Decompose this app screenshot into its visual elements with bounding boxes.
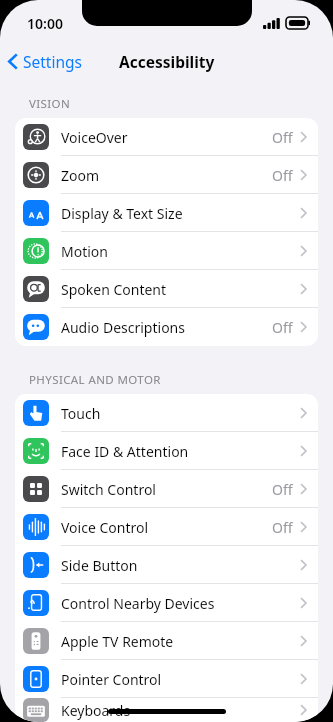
staticText: Audio Descriptions	[61, 318, 185, 337]
button[interactable]: Spoken Content	[15, 270, 318, 308]
button[interactable]: Keyboards	[15, 698, 318, 722]
staticText: 10:00	[27, 14, 63, 33]
staticText: Off	[272, 128, 293, 147]
button[interactable]: VoiceOver	[15, 118, 318, 156]
button[interactable]: Audio Descriptions	[15, 308, 318, 346]
button[interactable]: Face ID & Attention	[15, 432, 318, 470]
staticText: Face ID & Attention	[61, 442, 189, 461]
staticText: Pointer Control	[61, 670, 162, 689]
staticText: Display & Text Size	[61, 204, 183, 223]
staticText: Keyboards	[61, 701, 131, 720]
staticText: PHYSICAL AND MOTOR	[29, 372, 161, 388]
staticText: VoiceOver	[61, 128, 128, 147]
button[interactable]: Control Nearby Devices	[15, 584, 318, 622]
staticText: Touch	[61, 404, 101, 423]
button[interactable]: Motion	[15, 232, 318, 270]
button[interactable]: Settings	[0, 47, 90, 76]
button[interactable]: Voice Control	[15, 508, 318, 546]
staticText: Control Nearby Devices	[61, 594, 215, 613]
button[interactable]: Zoom	[15, 156, 318, 194]
staticText: VISION	[29, 96, 71, 112]
staticText: Zoom	[61, 166, 100, 185]
staticText: Voice Control	[61, 518, 149, 537]
button[interactable]: Switch Control	[15, 470, 318, 508]
button[interactable]: Apple TV Remote	[15, 622, 318, 660]
button[interactable]: Pointer Control	[15, 660, 318, 698]
button[interactable]: Display & Text Size	[15, 194, 318, 232]
staticText: Off	[272, 318, 293, 337]
staticText: Settings	[23, 51, 82, 72]
staticText: Spoken Content	[61, 280, 167, 299]
staticText: Accessibility	[119, 51, 215, 72]
staticText: Off	[272, 518, 293, 537]
staticText: Off	[272, 166, 293, 185]
staticText: Side Button	[61, 556, 138, 575]
button[interactable]: Touch	[15, 394, 318, 432]
staticText: Motion	[61, 242, 108, 261]
staticText: Switch Control	[61, 480, 156, 499]
button[interactable]: Side Button	[15, 546, 318, 584]
staticText: Off	[272, 480, 293, 499]
staticText: Apple TV Remote	[61, 632, 174, 651]
